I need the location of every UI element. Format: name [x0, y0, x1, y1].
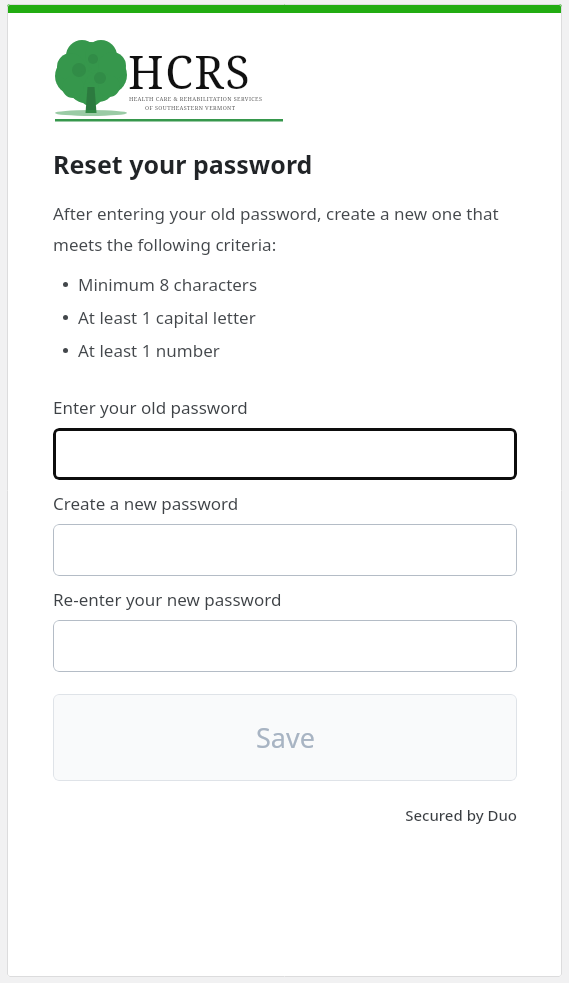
button[interactable]: New password — [53, 524, 517, 576]
staticText: After entering your old password, create… — [53, 202, 517, 256]
staticText: Create a new password — [53, 492, 239, 515]
staticText: At least 1 number — [78, 339, 220, 362]
staticText: Secured by Duo — [53, 805, 517, 825]
button[interactable]: Re-enter new password — [53, 620, 517, 672]
button[interactable]: Old password — [53, 428, 517, 480]
staticText: At least 1 capital letter — [78, 306, 256, 329]
staticText: Save — [256, 719, 315, 756]
staticText: Re-enter your new password — [53, 588, 282, 611]
staticText: Minimum 8 characters — [78, 273, 258, 296]
button[interactable]: Save — [53, 694, 517, 781]
staticText: Reset your password — [53, 147, 313, 181]
staticText: OF SOUTHEASTERN VERMONT — [145, 104, 236, 111]
staticText: HEALTH CARE & REHABILITATION SERVICES — [129, 95, 263, 102]
staticText: HCRS — [128, 41, 252, 102]
staticText: Enter your old password — [53, 396, 248, 419]
